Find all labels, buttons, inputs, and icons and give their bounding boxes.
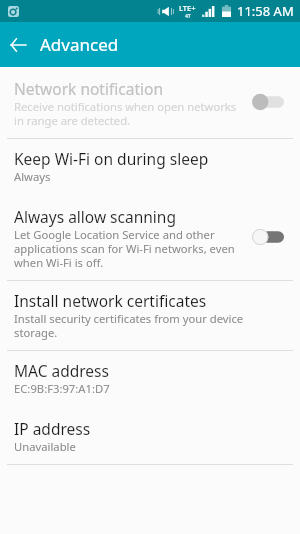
button[interactable]: Install network certificates bbox=[0, 281, 300, 350]
button[interactable]: MAC address bbox=[0, 351, 300, 406]
staticText: Receive notifications when open networks… bbox=[14, 99, 245, 128]
staticText: Let Google Location Service and other ap… bbox=[14, 227, 245, 270]
staticText: Unavailable bbox=[14, 439, 76, 454]
button[interactable]: Toggle bbox=[252, 228, 284, 246]
button[interactable]: Always allow scanning bbox=[0, 197, 300, 280]
button[interactable]: Keep Wi-Fi on during sleep bbox=[0, 139, 300, 194]
staticText: 4T bbox=[185, 13, 191, 20]
staticText: Always bbox=[14, 169, 51, 184]
staticText: Keep Wi-Fi on during sleep bbox=[14, 148, 209, 169]
staticText: Install network certificates bbox=[14, 290, 207, 311]
staticText: Advanced bbox=[40, 33, 119, 56]
staticText: MAC address bbox=[14, 360, 109, 381]
staticText: EC:9B:F3:97:A1:D7 bbox=[14, 381, 110, 396]
button[interactable]: IP address bbox=[0, 409, 300, 464]
staticText: 11:58 AM bbox=[237, 2, 294, 20]
staticText: Install security certificates from your … bbox=[14, 311, 245, 340]
staticText: LTE+ bbox=[179, 3, 196, 13]
staticText: Network notification bbox=[14, 78, 163, 99]
button[interactable]: Back bbox=[0, 22, 36, 67]
staticText: IP address bbox=[14, 418, 91, 439]
button[interactable]: Network notification bbox=[0, 69, 300, 138]
button[interactable]: Toggle bbox=[252, 93, 284, 111]
staticText: Always allow scanning bbox=[14, 206, 176, 227]
